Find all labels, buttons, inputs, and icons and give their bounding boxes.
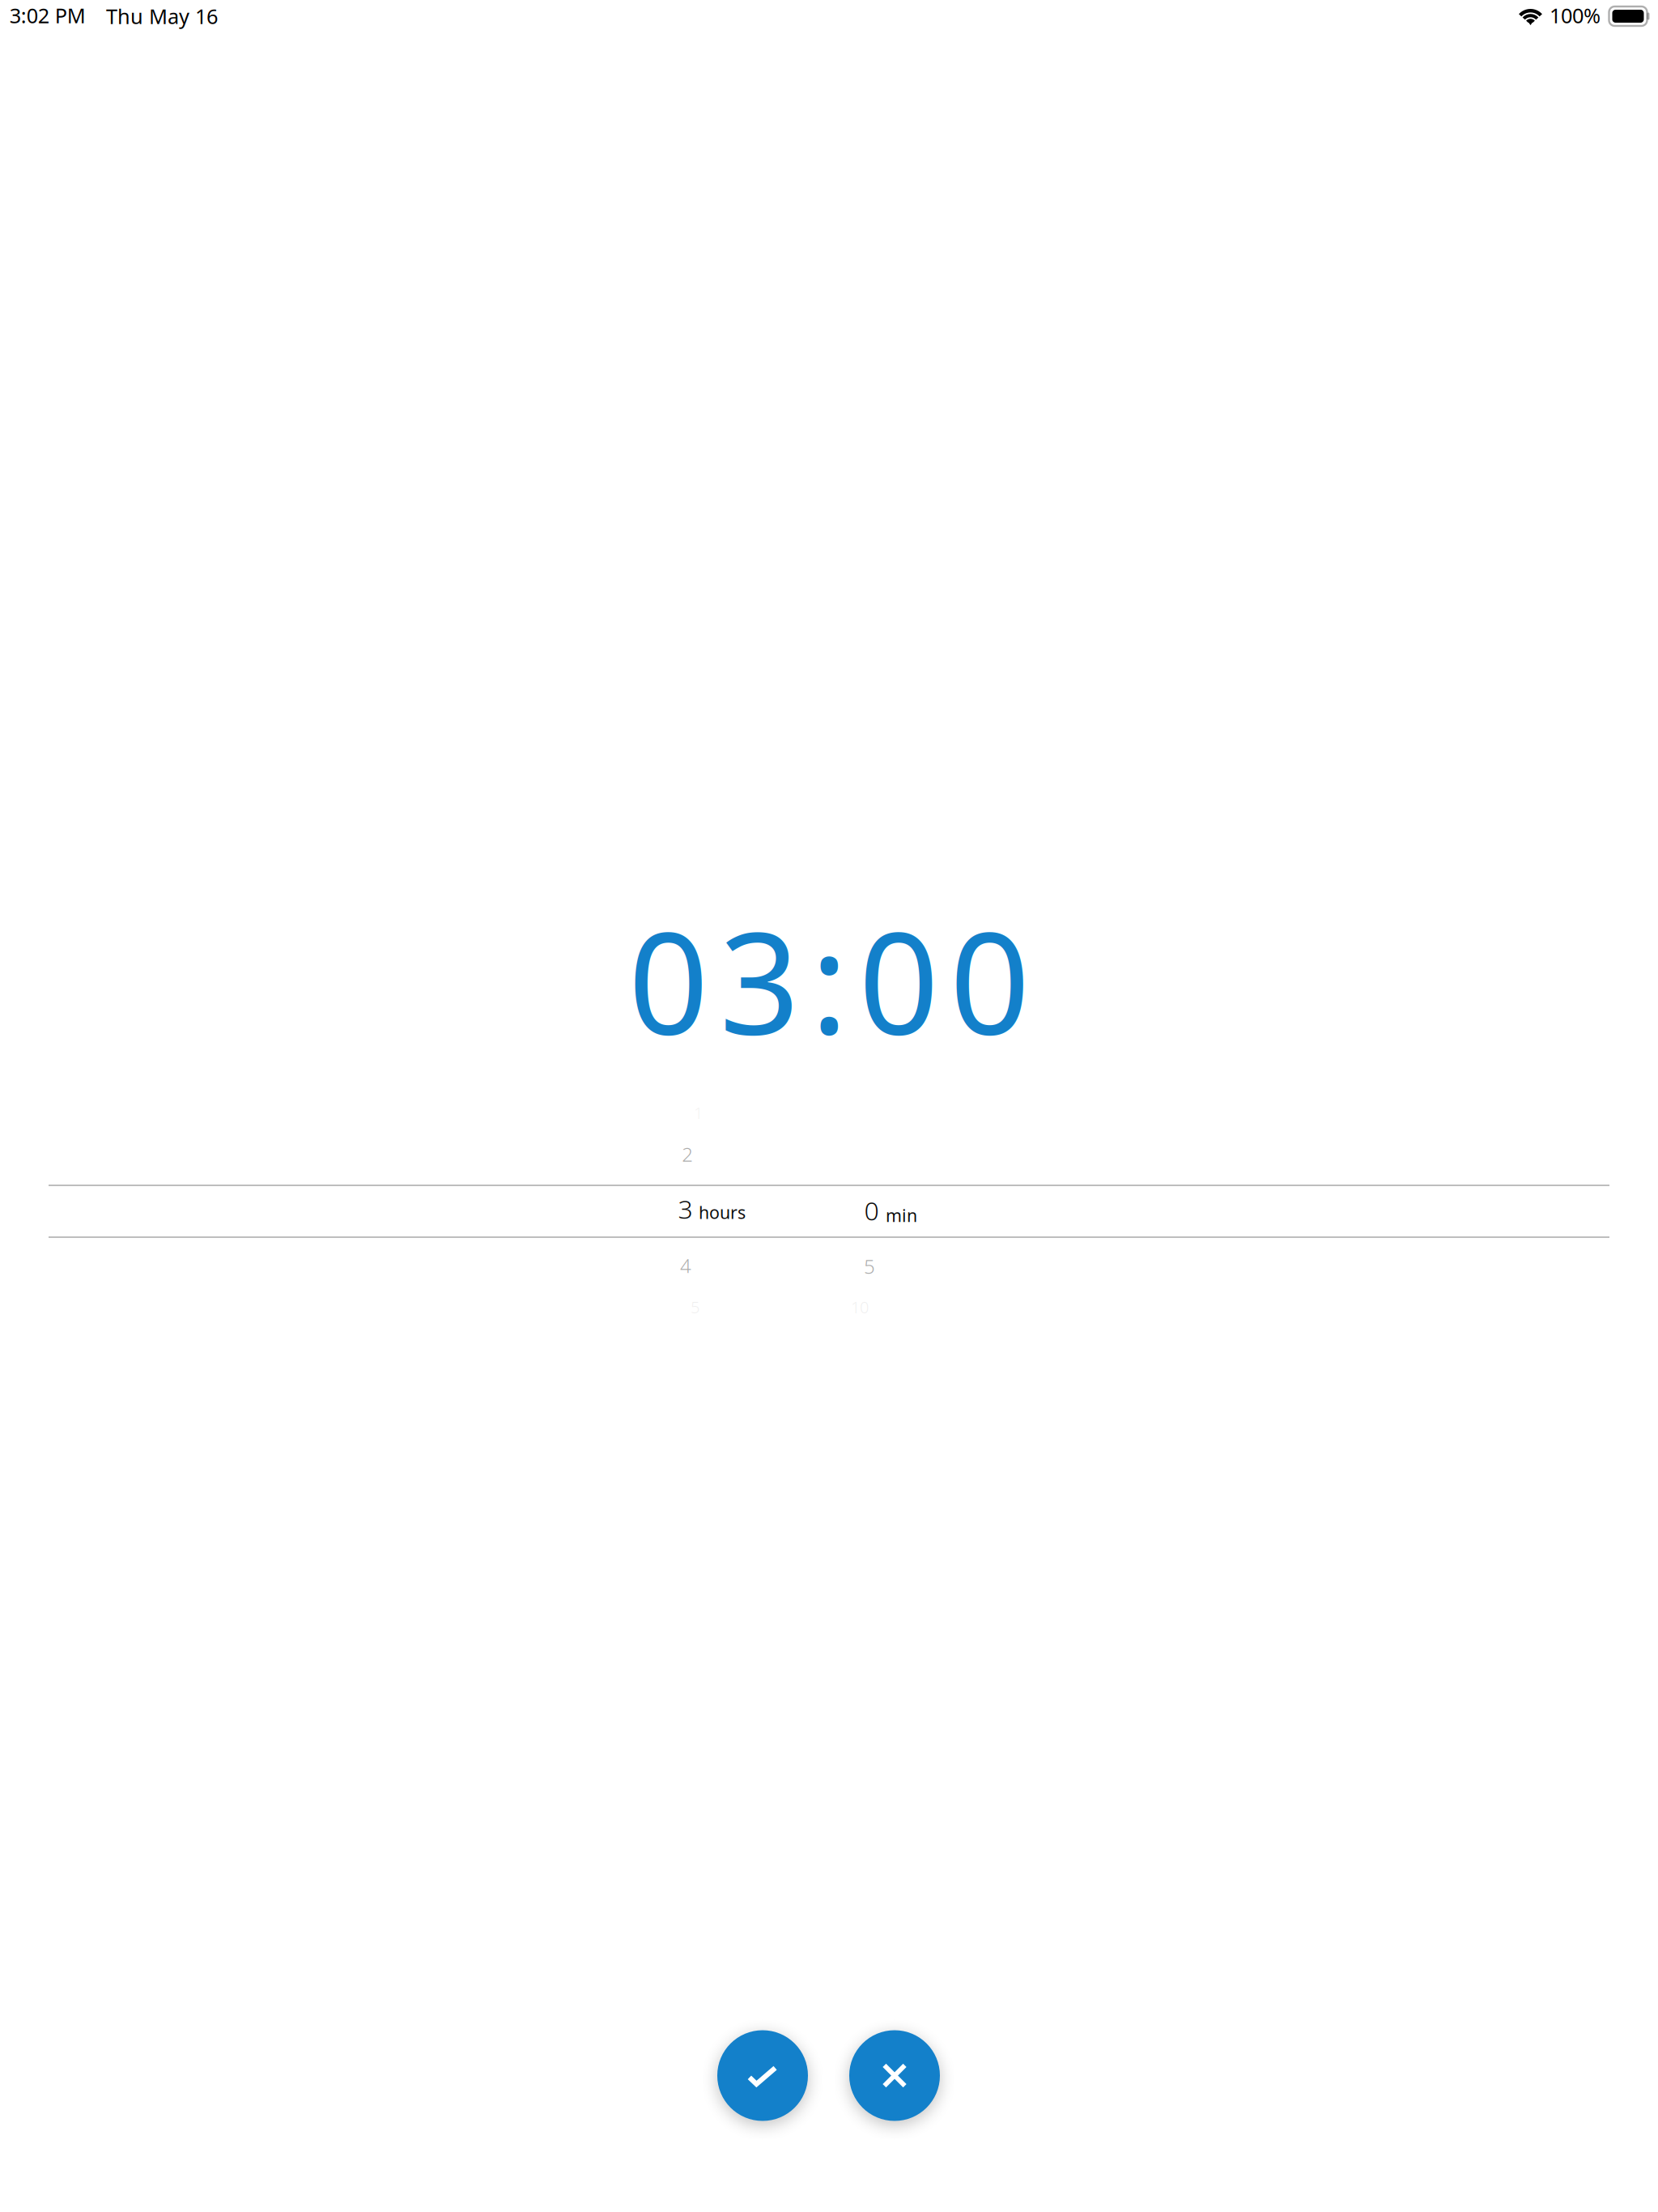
staticText: 100% — [1550, 2, 1601, 29]
staticText: Thu May 16 — [106, 2, 218, 30]
staticText: 4 — [680, 1253, 691, 1278]
button[interactable]: Minutes, 0 — [826, 1085, 1004, 1328]
staticText: 3 — [678, 1192, 693, 1226]
staticText: 10 — [851, 1296, 869, 1318]
staticText: 0 — [864, 1193, 879, 1228]
staticText: min — [886, 1204, 917, 1227]
staticText: 5 — [864, 1253, 875, 1279]
staticText: 03:00 — [628, 887, 1030, 1073]
button[interactable]: Cancel — [849, 2030, 940, 2121]
button[interactable]: Hours, 3 — [640, 1085, 818, 1328]
staticText: hours — [699, 1201, 746, 1224]
staticText: 5 — [691, 1296, 699, 1318]
button[interactable]: Confirm — [717, 2030, 808, 2121]
staticText: 2 — [682, 1141, 693, 1167]
staticText: 3:02 PM — [9, 2, 86, 29]
